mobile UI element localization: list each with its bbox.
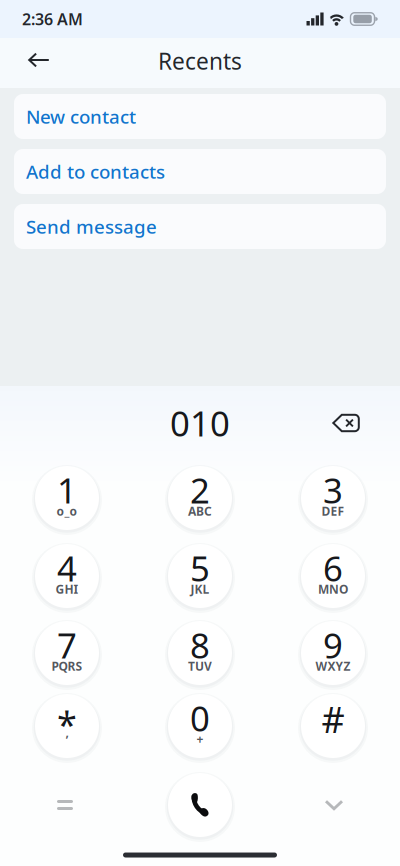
button[interactable]: 2 [150, 460, 250, 536]
staticText: 2 [190, 467, 210, 513]
button[interactable]: New contact [14, 94, 386, 139]
staticText: MNO [318, 581, 348, 597]
button[interactable]: Hide keypad [299, 775, 369, 835]
staticText: TUV [188, 658, 212, 674]
button[interactable]: 5 [150, 538, 250, 614]
staticText: o_o [56, 503, 77, 519]
button[interactable]: 3 [283, 460, 383, 536]
button[interactable]: 9 [283, 615, 383, 691]
button[interactable]: Send message [14, 204, 386, 249]
staticText: 0 [190, 695, 210, 741]
staticText: , [65, 724, 68, 740]
button[interactable]: Backspace [318, 398, 374, 448]
staticText: GHI [55, 581, 78, 597]
staticText: 2:36 AM [22, 8, 83, 30]
staticText: 6 [323, 545, 343, 591]
staticText: Send message [26, 214, 157, 239]
staticText: PQRS [51, 658, 82, 674]
button[interactable]: * [17, 688, 117, 764]
staticText: 5 [190, 545, 210, 591]
staticText: Recents [158, 46, 242, 76]
button[interactable]: # [283, 688, 383, 764]
staticText: 010 [170, 400, 230, 446]
button[interactable]: 6 [283, 538, 383, 614]
staticText: 4 [57, 545, 77, 591]
button[interactable]: Keypad options [30, 775, 100, 835]
staticText: 3 [323, 467, 343, 513]
button[interactable]: Back [14, 38, 64, 88]
staticText: # [321, 695, 344, 743]
button[interactable]: 1 [17, 460, 117, 536]
staticText: ABC [188, 503, 212, 519]
staticText: 8 [190, 622, 210, 668]
staticText: New contact [26, 104, 136, 129]
staticText: + [196, 731, 203, 747]
staticText: WXYZ [315, 658, 350, 674]
button[interactable]: Add to contacts [14, 149, 386, 194]
staticText: DEF [321, 503, 344, 519]
button[interactable]: 7 [17, 615, 117, 691]
staticText: JKL [190, 581, 209, 597]
staticText: Add to contacts [26, 159, 165, 184]
staticText: * [57, 700, 77, 747]
button[interactable]: Call [162, 767, 238, 843]
staticText: 9 [323, 622, 343, 668]
button[interactable]: 4 [17, 538, 117, 614]
staticText: 1 [57, 467, 77, 513]
button[interactable]: 8 [150, 615, 250, 691]
button[interactable]: 0 [150, 688, 250, 764]
staticText: 7 [57, 622, 77, 668]
